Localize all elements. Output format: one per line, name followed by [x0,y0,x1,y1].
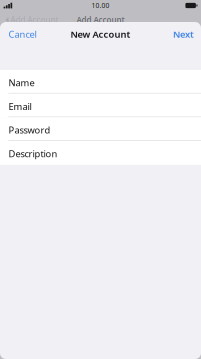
staticText: Email [8,100,31,112]
staticText: New Account [70,28,130,40]
button[interactable]: Name [0,70,201,94]
button[interactable]: Next [166,22,201,46]
staticText: Name [8,76,34,89]
staticText: Next [173,28,194,40]
button[interactable]: Cancel [0,22,45,46]
staticText: Description [8,147,57,160]
staticText: Password [8,124,50,136]
staticText: 10.00 [91,1,109,10]
button[interactable]: Description [0,141,201,164]
staticText: Add Account [76,15,124,25]
staticText: Add Account [10,15,58,25]
button[interactable]: Password [0,117,201,141]
button[interactable]: Email [0,94,201,117]
staticText: Cancel [8,28,36,40]
